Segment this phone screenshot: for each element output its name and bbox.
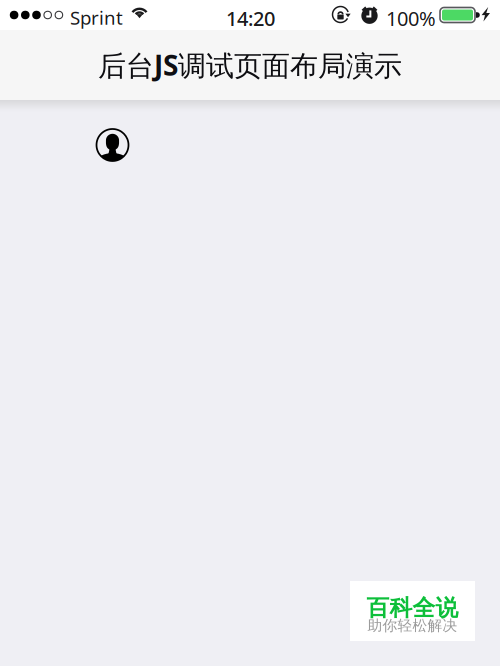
staticText: 14:20	[226, 5, 275, 32]
staticText: 100%	[386, 5, 436, 32]
staticText: Sprint	[70, 5, 123, 30]
button[interactable]: Profile	[96, 129, 128, 161]
staticText: 百科全说	[366, 594, 458, 622]
staticText: 后台JS调试页面布局演示	[98, 46, 402, 84]
staticText: 助你轻松解决	[367, 616, 457, 634]
